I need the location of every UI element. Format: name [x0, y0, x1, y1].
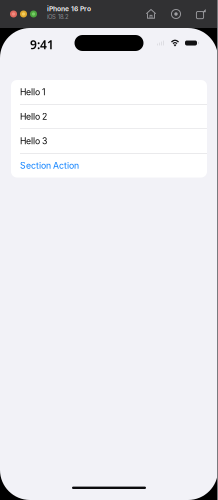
- staticText: Hello 2: [20, 111, 47, 122]
- staticText: Section Action: [20, 160, 79, 171]
- button[interactable]: Screenshot: [169, 7, 183, 21]
- staticText: iPhone 16 Pro: [47, 5, 91, 13]
- button[interactable]: Section Action: [11, 153, 207, 177]
- button[interactable]: Hello 1: [11, 80, 207, 104]
- staticText: 9:41: [30, 36, 54, 52]
- staticText: iOS 18.2: [47, 13, 69, 20]
- staticText: Hello 3: [20, 136, 47, 146]
- button[interactable]: Hello 2: [11, 104, 207, 128]
- button[interactable]: Hello 3: [11, 129, 207, 153]
- button[interactable]: Rotate: [194, 7, 208, 21]
- button[interactable]: Home: [144, 7, 158, 21]
- staticText: Hello 1: [20, 87, 46, 97]
